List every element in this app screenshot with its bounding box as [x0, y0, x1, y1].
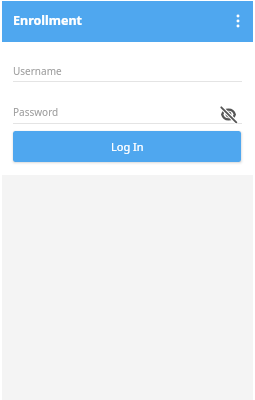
staticText: Log In	[111, 139, 144, 154]
staticText: Password	[13, 105, 59, 119]
button[interactable]: Username	[2, 58, 253, 82]
button[interactable]: Password	[2, 99, 253, 123]
staticText: Username	[13, 64, 62, 78]
button[interactable]: Log In	[13, 131, 241, 162]
button[interactable]: More options	[225, 8, 251, 34]
button[interactable]: Toggle password visibility	[218, 104, 238, 124]
staticText: Enrollment	[13, 12, 82, 29]
